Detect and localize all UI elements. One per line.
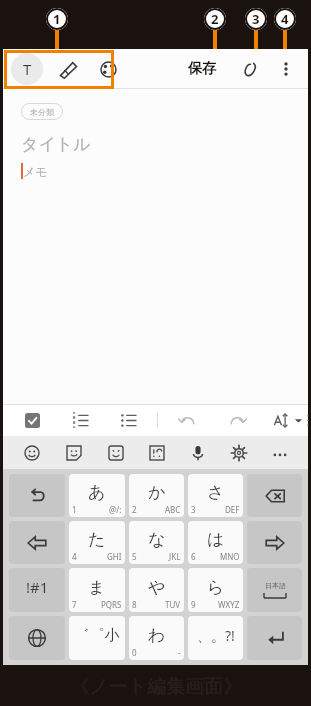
button[interactable]: Handwriting — [53, 54, 83, 84]
staticText: ゛゜小 — [74, 626, 120, 645]
button[interactable]: ら — [188, 568, 243, 612]
button[interactable]: Undo — [176, 409, 198, 431]
staticText: 未分類 — [30, 107, 54, 117]
staticText: 5 — [132, 551, 137, 562]
staticText: 8 — [132, 599, 137, 610]
button[interactable]: 、。?! — [188, 616, 243, 660]
staticText: ら — [207, 577, 225, 598]
button[interactable]: More options — [272, 55, 300, 83]
staticText: た — [88, 529, 106, 550]
button[interactable]: Bulleted list — [117, 409, 139, 431]
button[interactable]: Emoji — [11, 436, 53, 469]
staticText: 2 — [132, 504, 137, 515]
staticText: - — [178, 647, 181, 658]
staticText: 日本語 — [265, 581, 286, 590]
button[interactable]: な — [129, 521, 184, 564]
staticText: TUV — [165, 599, 181, 610]
staticText: MNO — [220, 551, 240, 562]
staticText: ABC — [165, 504, 181, 515]
button[interactable]: Checklist — [21, 409, 43, 431]
staticText: 9 — [191, 599, 196, 610]
staticText: タイトル — [21, 134, 91, 155]
button[interactable]: は — [188, 521, 243, 564]
button[interactable]: Attach — [234, 54, 264, 84]
button[interactable]: Emoticon — [95, 436, 136, 469]
button[interactable]: undo — [9, 474, 65, 517]
button[interactable]: Numbered list — [69, 409, 91, 431]
button[interactable]: globe — [9, 616, 65, 660]
button[interactable]: Palette — [93, 54, 123, 84]
staticText: PQRS — [101, 599, 122, 610]
button[interactable]: del — [247, 474, 302, 517]
button[interactable]: Voice input — [177, 436, 218, 469]
staticText: JKL — [169, 551, 181, 562]
staticText: や — [148, 577, 166, 598]
staticText: ま — [88, 577, 106, 598]
button[interactable]: Symbols — [136, 436, 177, 469]
button[interactable]: や — [129, 568, 184, 612]
staticText: T — [23, 59, 32, 79]
button[interactable]: Redo — [226, 409, 248, 431]
staticText: 4 — [72, 551, 77, 562]
staticText: WXYZ — [218, 599, 240, 610]
staticText: な — [148, 529, 166, 550]
staticText: メモ — [23, 164, 48, 179]
button[interactable]: More — [259, 436, 300, 469]
staticText: DEF — [225, 504, 240, 515]
button[interactable]: わ — [129, 616, 184, 660]
button[interactable]: left — [9, 521, 65, 564]
staticText: わ — [148, 625, 166, 646]
button[interactable]: Font size — [270, 409, 292, 431]
staticText: は — [207, 529, 225, 550]
staticText: !#1 — [26, 577, 49, 597]
staticText: 《ノート編集画面》 — [70, 675, 242, 699]
staticText: 1 — [53, 10, 61, 28]
button[interactable]: あ — [69, 474, 125, 517]
staticText: か — [148, 482, 166, 503]
button[interactable]: enter — [247, 616, 302, 660]
button[interactable]: さ — [188, 474, 243, 517]
button[interactable]: space — [247, 568, 302, 612]
button[interactable]: !#1 — [9, 568, 65, 612]
button[interactable]: ゛゜小 — [69, 616, 125, 660]
staticText: 4 — [281, 10, 289, 28]
button[interactable]: た — [69, 521, 125, 564]
staticText: 7 — [72, 599, 77, 610]
button[interactable]: right — [247, 521, 302, 564]
staticText: 6 — [191, 551, 196, 562]
staticText: 、。?! — [197, 626, 235, 645]
staticText: 1 — [72, 504, 77, 515]
button[interactable]: か — [129, 474, 184, 517]
button[interactable]: Sticker — [53, 436, 95, 469]
button[interactable]: Text mode — [11, 53, 43, 85]
staticText: 0 — [132, 647, 137, 658]
button[interactable]: 未分類 — [30, 103, 54, 120]
staticText: GHI — [107, 551, 122, 562]
staticText: 3 — [191, 504, 196, 515]
staticText: 保存 — [188, 60, 216, 78]
button[interactable]: 保存 — [184, 52, 220, 86]
button[interactable]: Settings — [218, 436, 259, 469]
button[interactable]: ま — [69, 568, 125, 612]
staticText: さ — [207, 482, 225, 503]
staticText: あ — [88, 482, 106, 503]
staticText: 3 — [252, 10, 260, 28]
staticText: 2 — [211, 10, 219, 28]
staticText: @/: — [109, 504, 122, 515]
